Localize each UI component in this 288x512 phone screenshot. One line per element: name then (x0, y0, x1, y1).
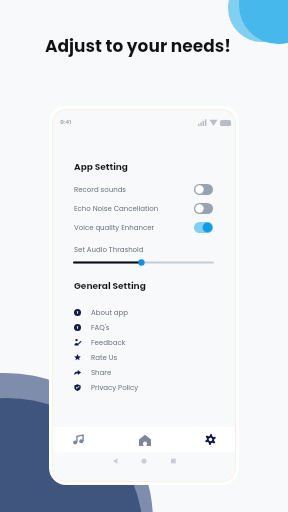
button[interactable]: FAQ's (74, 320, 213, 335)
staticText: Privacy Policy (91, 383, 139, 393)
staticText: App Setting (74, 161, 128, 174)
button[interactable]: Music (65, 427, 93, 452)
button[interactable]: Privacy Policy (74, 380, 213, 395)
button[interactable]: Voice quality Enhancer (74, 222, 213, 233)
staticText: Record sounds (74, 185, 194, 195)
button[interactable] (74, 258, 213, 267)
staticText: Feedback (91, 338, 126, 348)
button[interactable]: Share (74, 365, 213, 380)
staticText: Adjust to your needs! (45, 34, 231, 58)
staticText: Rate Us (91, 353, 118, 363)
staticText: Set Audio Thrashold (74, 245, 144, 255)
staticText: 9:41 (60, 118, 72, 126)
staticText: General Setting (74, 280, 146, 293)
button[interactable]: Feedback (74, 335, 213, 350)
button[interactable]: Home (131, 427, 159, 452)
staticText: FAQ's (91, 323, 110, 333)
button[interactable]: Settings (196, 427, 224, 452)
button[interactable]: Echo Noise Cancellation (74, 203, 213, 214)
staticText: Voice quality Enhancer (74, 223, 194, 233)
button[interactable]: About app (74, 305, 213, 320)
staticText: Echo Noise Cancellation (74, 204, 194, 214)
staticText: About app (91, 308, 129, 318)
button[interactable]: Rate Us (74, 350, 213, 365)
button[interactable]: Record sounds (74, 184, 213, 195)
staticText: Share (91, 368, 112, 378)
